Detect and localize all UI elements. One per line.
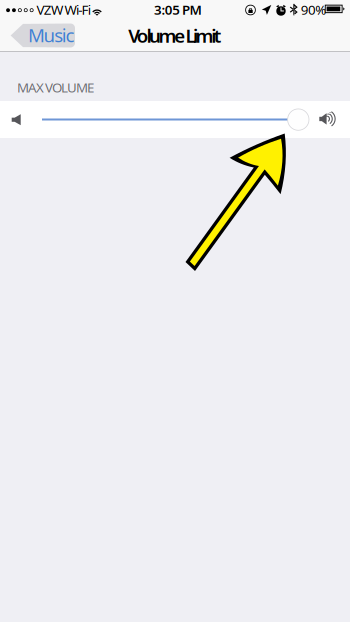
staticText: Music [28, 23, 74, 47]
staticText: MAX VOLUME [17, 78, 94, 96]
button[interactable]: Music [10, 23, 75, 47]
staticText: Volume Limit [128, 23, 222, 48]
staticText: VZW Wi-Fi [36, 1, 91, 18]
staticText: 3:05 PM [154, 1, 201, 18]
staticText: 90% [301, 1, 326, 18]
